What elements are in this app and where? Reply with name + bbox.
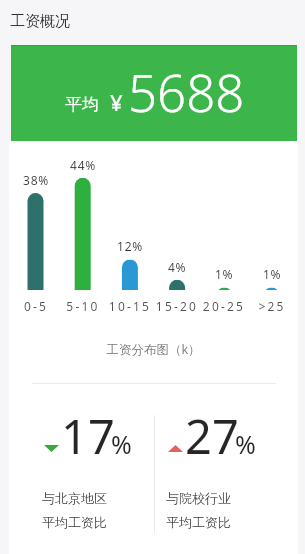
staticText: 与院校行业 [166,490,231,506]
staticText: 17 [61,404,115,468]
staticText: 5688 [128,57,245,126]
staticText: 平均 [65,94,99,115]
button[interactable]: 工资概况 [0,0,110,45]
button[interactable]: 上涨 27% [166,406,290,541]
staticText: 27 [185,404,239,468]
staticText: 20-25 [200,298,248,314]
staticText: 38% [12,172,60,188]
staticText: ¥ [110,87,123,117]
staticText: 平均工资比 [42,514,107,530]
staticText: 10-15 [106,298,154,314]
button[interactable]: 下降 17% [42,406,166,541]
staticText: 15-20 [153,298,201,314]
staticText: 与北京地区 [42,490,107,506]
staticText: >25 [248,298,296,314]
staticText: 0-5 [12,298,60,314]
staticText: 4% [153,259,201,275]
staticText: 44% [59,157,107,173]
staticText: 1% [200,266,248,282]
staticText: 1% [248,266,296,282]
button[interactable]: 平均 [11,45,297,141]
staticText: 工资分布图（k） [9,341,298,358]
staticText: % [111,427,132,461]
staticText: % [235,427,256,461]
staticText: 工资概况 [10,12,70,31]
staticText: 5-10 [59,298,107,314]
staticText: 平均工资比 [166,514,231,530]
staticText: 12% [106,238,154,254]
